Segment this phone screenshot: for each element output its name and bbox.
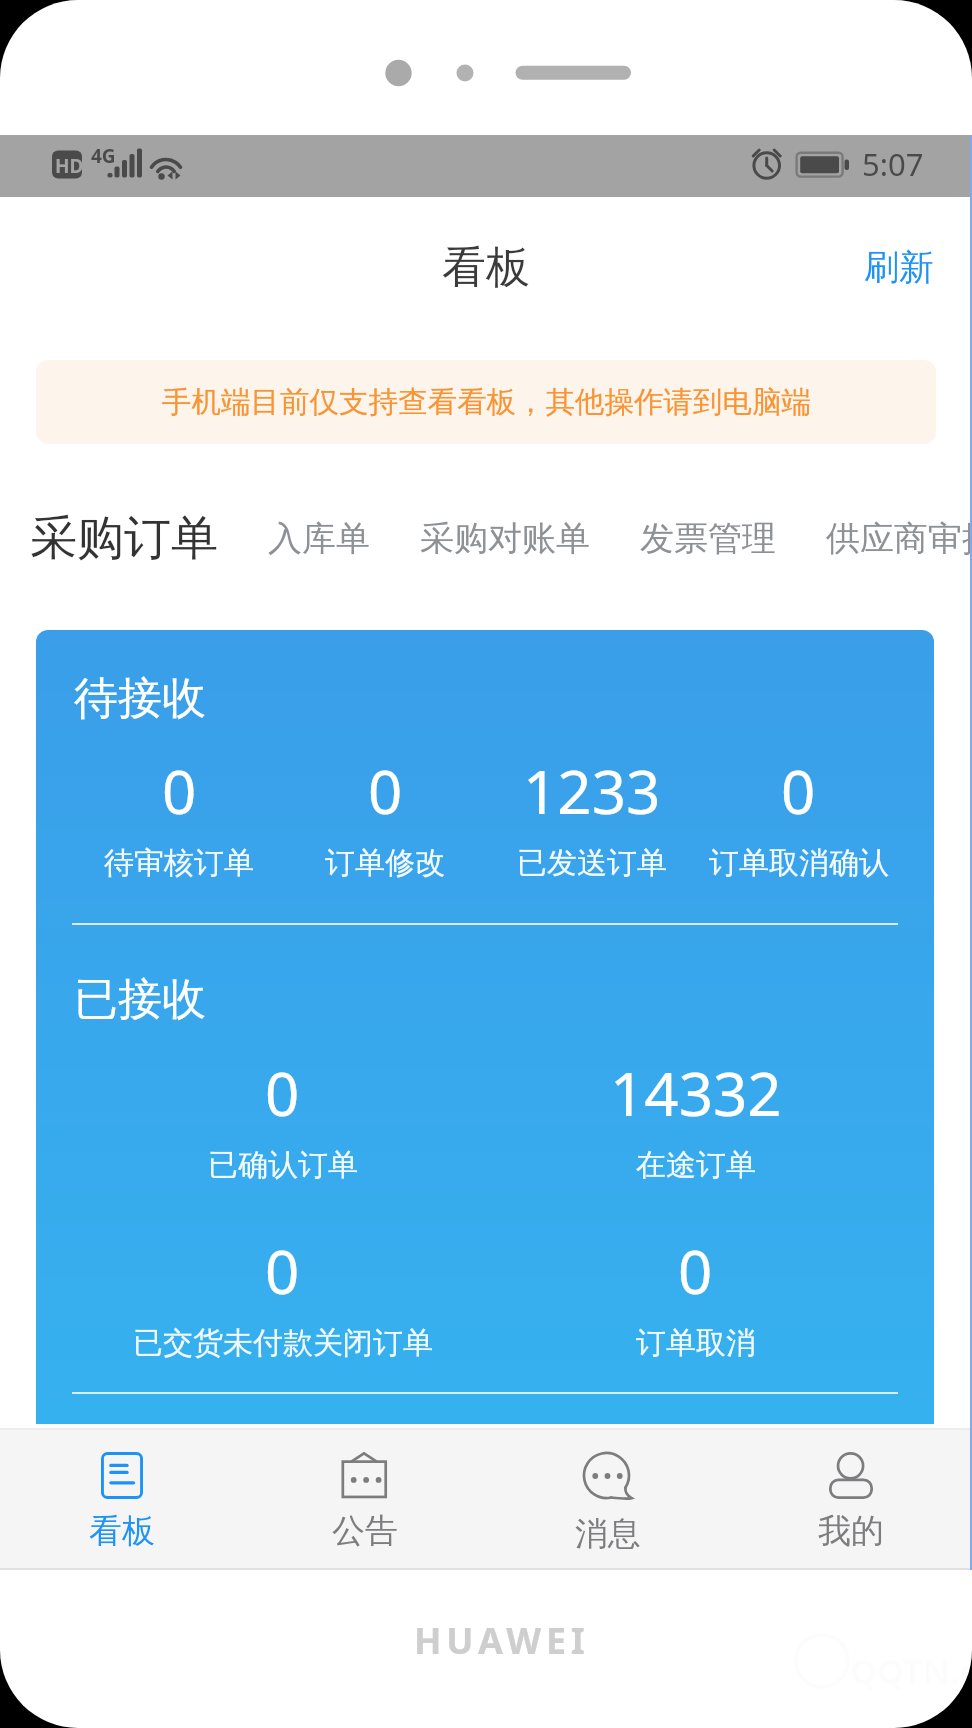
staticText: QQTN.com — [850, 1648, 972, 1694]
button[interactable]: Announcements — [243, 1428, 486, 1566]
staticText: 入库单 — [268, 517, 370, 560]
staticText: 0 — [265, 1230, 300, 1312]
button[interactable]: 入库单 — [268, 490, 370, 582]
staticText: 5:07 — [862, 143, 924, 185]
staticText: 0 — [368, 750, 403, 832]
staticText: 看板 — [442, 240, 530, 295]
staticText: 0 — [781, 750, 816, 832]
button[interactable]: 采购对账单 — [420, 490, 590, 582]
other: Profile — [829, 1452, 873, 1499]
staticText: 订单修改 — [325, 844, 445, 882]
staticText: 0 — [162, 750, 197, 832]
staticText: 订单取消 — [636, 1324, 756, 1362]
staticText: 已交货未付款关闭订单 — [133, 1324, 433, 1362]
staticText: 待接收 — [74, 671, 206, 726]
button[interactable]: 发票管理 — [640, 490, 776, 582]
staticText: 采购订单 — [30, 509, 218, 568]
staticText: 在途订单 — [636, 1146, 756, 1184]
button[interactable]: 0 — [489, 1230, 902, 1362]
staticText: 14332 — [610, 1052, 782, 1134]
staticText: HUAWEI — [414, 1616, 590, 1665]
staticText: 我的 — [818, 1510, 884, 1552]
staticText: 刷新 — [864, 245, 934, 289]
button[interactable]: 0 — [282, 750, 488, 882]
staticText: 手机端目前仅支持查看看板，其他操作请到电脑端 — [162, 384, 811, 421]
staticText: 公告 — [332, 1510, 398, 1552]
other: Announcements — [341, 1452, 388, 1499]
staticText: 供应商审批 — [826, 517, 972, 560]
staticText: HD — [55, 153, 84, 179]
staticText: 0 — [265, 1052, 300, 1134]
staticText: 4G — [91, 143, 116, 169]
staticText: 看板 — [89, 1510, 155, 1552]
button[interactable]: 14332 — [489, 1052, 902, 1184]
staticText: 1233 — [523, 750, 661, 832]
button[interactable]: 0 — [76, 750, 282, 882]
staticText: 采购对账单 — [420, 517, 590, 560]
staticText: 已发送订单 — [517, 844, 667, 882]
staticText: 待审核订单 — [104, 844, 254, 882]
staticText: 0 — [678, 1230, 713, 1312]
button[interactable]: 采购订单 — [30, 490, 218, 582]
other: Messages — [583, 1452, 633, 1502]
button[interactable]: 0 — [695, 750, 902, 882]
button[interactable]: 1233 — [488, 750, 695, 882]
button[interactable]: Profile — [729, 1428, 972, 1566]
staticText: 消息 — [575, 1513, 641, 1555]
button[interactable]: Messages — [486, 1428, 729, 1566]
button[interactable]: 0 — [76, 1052, 489, 1184]
staticText: 订单取消确认 — [709, 844, 889, 882]
button[interactable]: Dashboard — [0, 1428, 243, 1566]
button[interactable]: 供应商审批 — [826, 490, 972, 582]
staticText: 已确认订单 — [208, 1146, 358, 1184]
button[interactable]: 0 — [76, 1230, 489, 1362]
other: Dashboard — [101, 1452, 143, 1499]
button[interactable]: 刷新 — [826, 227, 972, 307]
staticText: 发票管理 — [640, 517, 776, 560]
staticText: 已接收 — [74, 972, 206, 1027]
